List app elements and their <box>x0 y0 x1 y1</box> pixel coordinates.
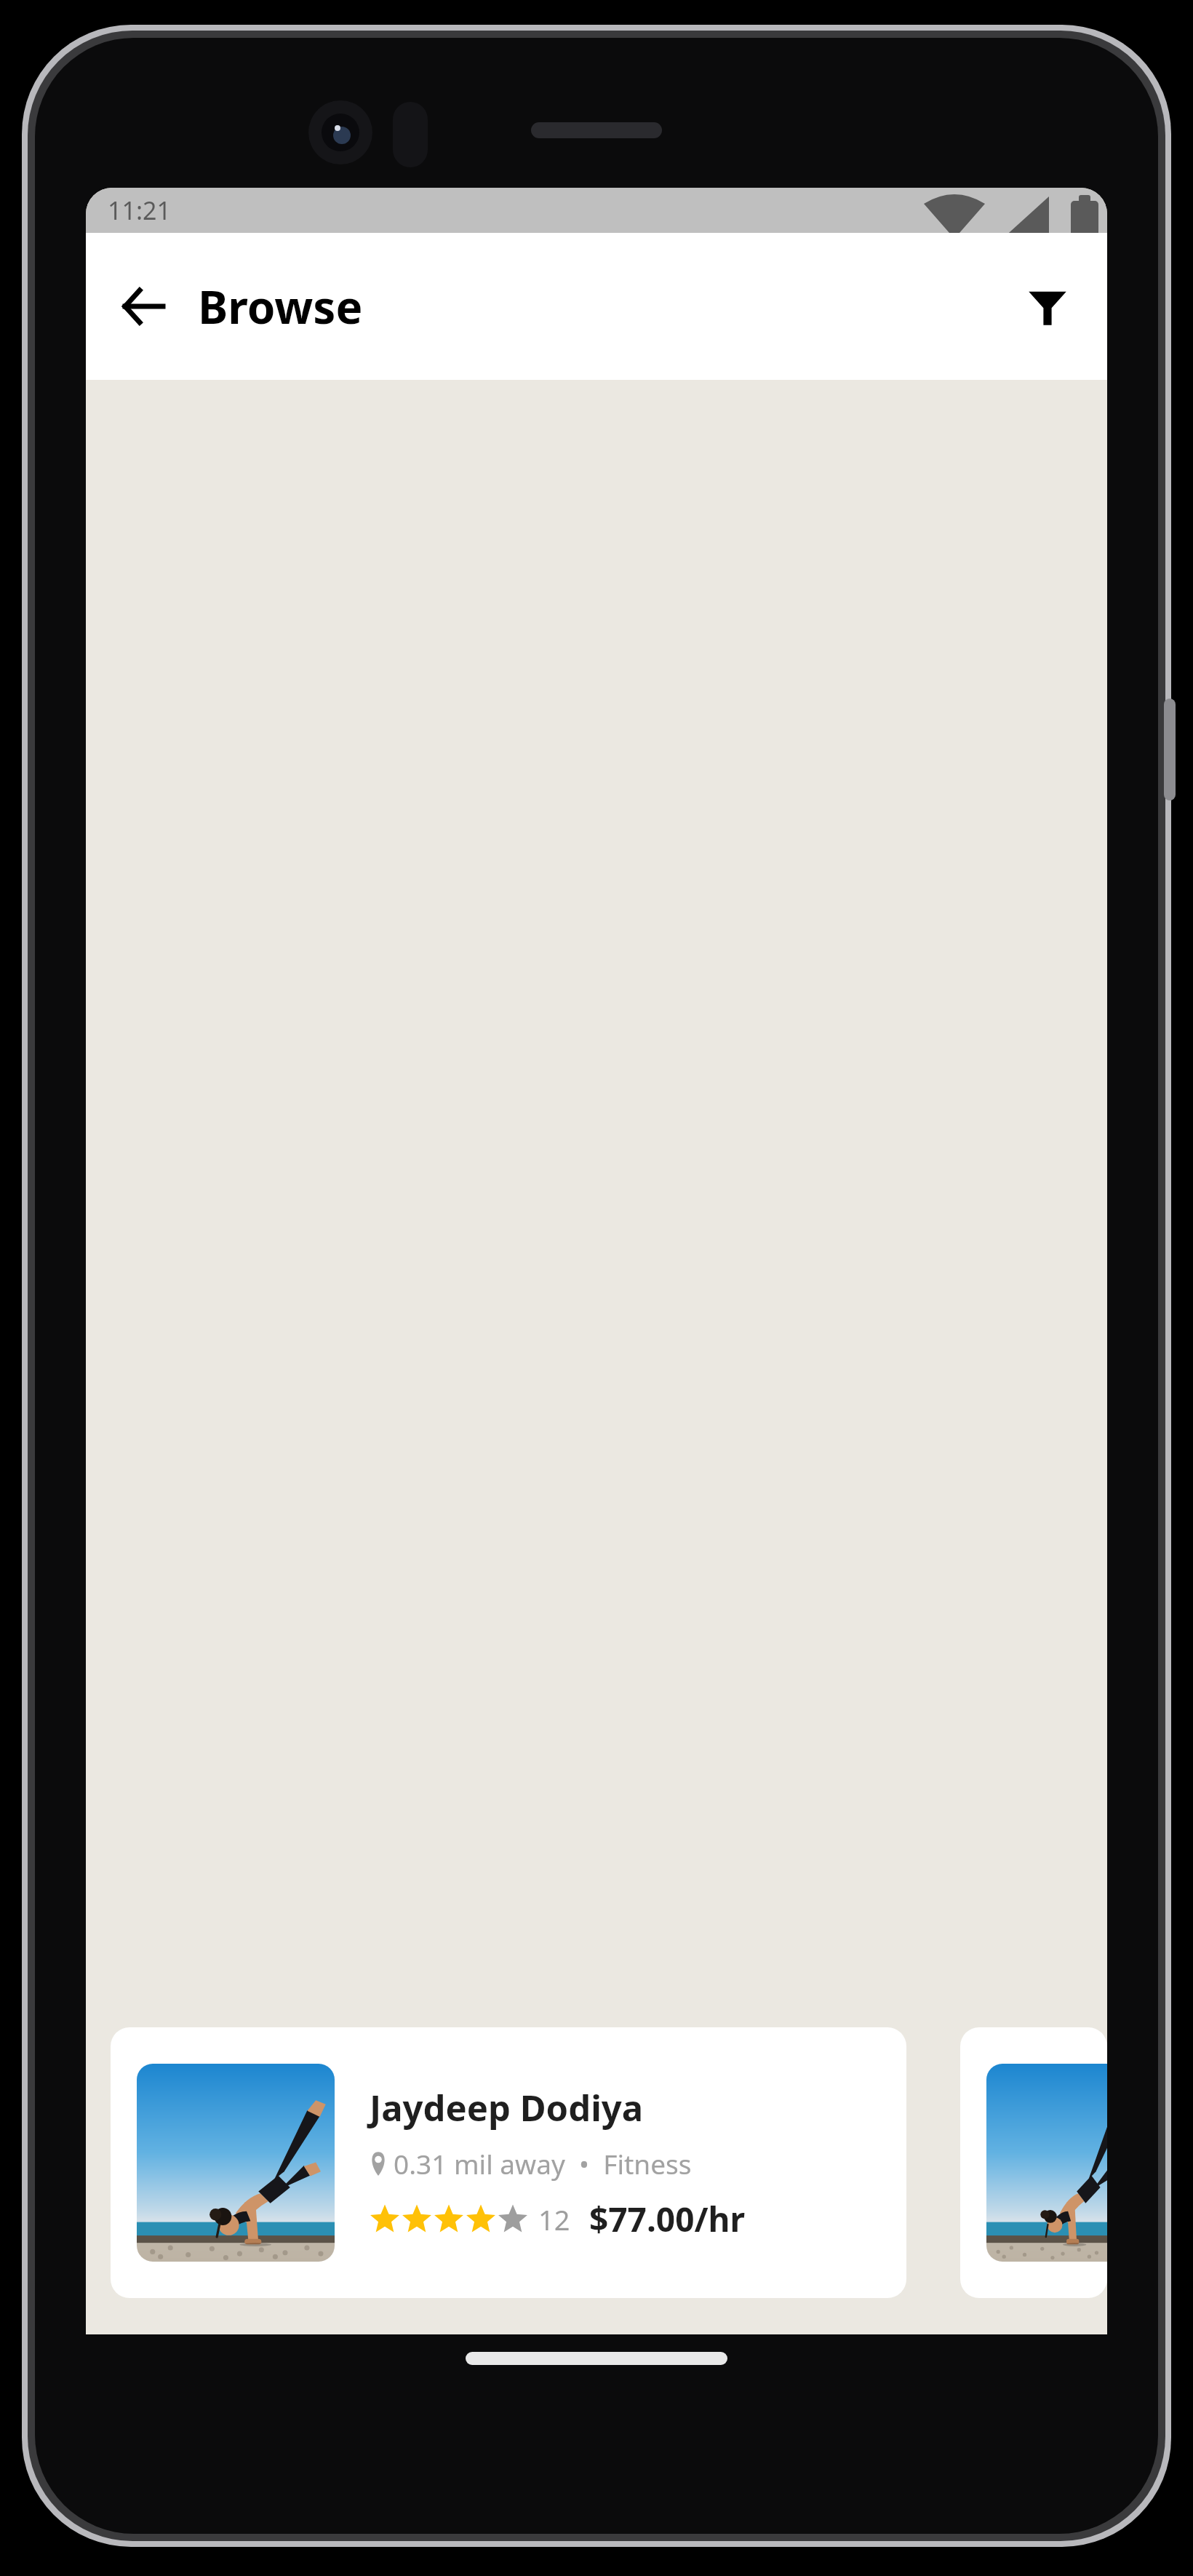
staticText: 11:21 <box>108 194 171 227</box>
staticText: $77.00/hr <box>589 2196 746 2242</box>
button[interactable]: Jaydeep Dodiya <box>111 2027 906 2298</box>
staticText: Jaydeep Dodiya <box>370 2083 644 2132</box>
button[interactable]: Filter <box>1010 269 1085 344</box>
staticText: 0.31 mil away • Fitness <box>394 2145 692 2182</box>
button[interactable]: Back <box>106 269 182 344</box>
button[interactable] <box>960 2027 1107 2298</box>
staticText: 12 <box>538 2201 570 2238</box>
staticText: Browse <box>198 276 363 337</box>
